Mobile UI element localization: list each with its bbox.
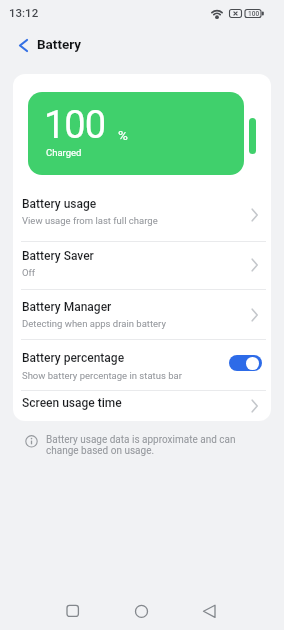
button[interactable] (229, 355, 262, 371)
button[interactable]: Battery usage (13, 175, 271, 241)
staticText: Battery Saver (22, 249, 94, 263)
button[interactable]: Battery Saver (13, 241, 271, 289)
button[interactable] (124, 596, 160, 626)
staticText: Screen usage time (22, 396, 122, 410)
staticText: % (118, 127, 128, 143)
button[interactable]: Battery percentage (13, 340, 271, 390)
staticText: Battery Manager (22, 300, 112, 314)
button[interactable] (12, 35, 34, 55)
staticText: Battery (37, 36, 82, 52)
staticText: Battery usage data is approximate and ca… (46, 434, 236, 446)
staticText: Charged (46, 147, 82, 158)
staticText: Off (22, 267, 36, 278)
staticText: Battery usage (22, 197, 97, 211)
staticText: 100 (248, 10, 260, 18)
staticText: 100 (44, 103, 106, 148)
button[interactable] (55, 596, 91, 626)
staticText: Detecting when apps drain battery (22, 318, 166, 329)
button[interactable]: Battery Manager (13, 290, 271, 339)
staticText: View usage from last full charge (22, 215, 158, 226)
staticText: change based on usage. (46, 445, 155, 457)
button[interactable]: Screen usage time (13, 391, 271, 421)
staticText: 13:12 (9, 6, 39, 19)
staticText: Battery percentage (22, 351, 125, 365)
staticText: Show battery percentage in status bar (22, 370, 182, 381)
button[interactable] (192, 596, 228, 626)
